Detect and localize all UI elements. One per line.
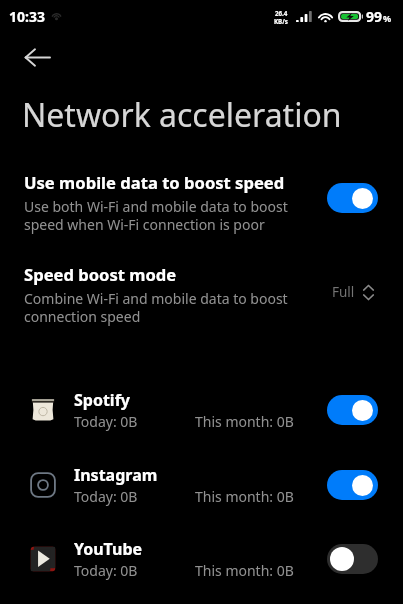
button[interactable]: Use mobile data to boost speed: [0, 171, 403, 235]
button[interactable]: Toggle on: [327, 395, 378, 425]
staticText: Today: 0B: [74, 412, 138, 431]
staticText: Network acceleration: [22, 93, 342, 137]
staticText: This month: 0B: [195, 561, 294, 580]
button[interactable]: Toggle on: [327, 470, 378, 500]
staticText: Full: [332, 283, 355, 301]
staticText: Use both Wi-Fi and mobile data to boost …: [24, 197, 288, 235]
staticText: Today: 0B: [74, 487, 138, 506]
button[interactable]: Speed boost mode: Full: [332, 283, 374, 301]
staticText: KB/s: [274, 17, 288, 25]
staticText: 10:33: [9, 7, 45, 26]
staticText: Today: 0B: [74, 561, 138, 580]
staticText: YouTube: [74, 538, 143, 560]
button[interactable]: Instagram: [0, 464, 403, 506]
staticText: Use mobile data to boost speed: [24, 171, 285, 194]
button[interactable]: YouTube: [0, 538, 403, 580]
button[interactable]: Speed boost mode: [0, 263, 403, 327]
staticText: 99: [366, 7, 383, 26]
button[interactable]: Toggle off: [327, 544, 378, 574]
staticText: Combine Wi-Fi and mobile data to boost c…: [24, 289, 288, 327]
staticText: This month: 0B: [195, 412, 294, 431]
button[interactable]: Spotify: [0, 389, 403, 431]
staticText: Instagram: [74, 464, 158, 486]
staticText: This month: 0B: [195, 487, 294, 506]
staticText: %: [383, 12, 392, 24]
button[interactable]: Toggle on: [327, 183, 378, 213]
button[interactable]: Back: [13, 33, 61, 81]
staticText: Speed boost mode: [24, 263, 177, 286]
staticText: Spotify: [74, 389, 130, 411]
staticText: 26.4: [275, 9, 288, 17]
